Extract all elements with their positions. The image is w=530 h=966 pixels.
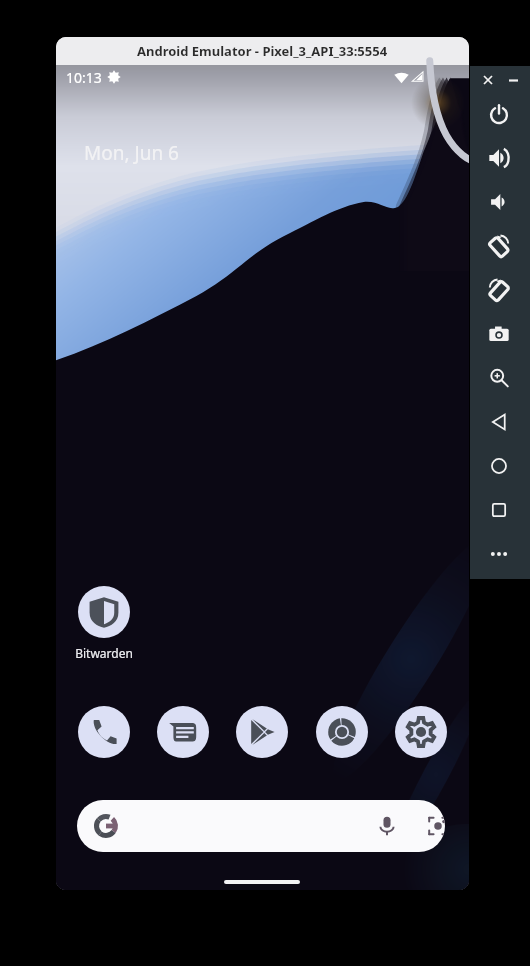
button[interactable]: Screenshot (485, 320, 513, 348)
button[interactable]: Minimize (502, 69, 524, 91)
button[interactable]: Phone (78, 706, 130, 758)
button[interactable]: Power (485, 100, 513, 128)
staticText: Bitwarden (75, 645, 133, 661)
button[interactable]: Rotate right (485, 276, 513, 304)
button[interactable]: Close (477, 69, 499, 91)
button[interactable]: More (485, 540, 513, 568)
button[interactable]: Back (485, 408, 513, 436)
button[interactable]: Messages (157, 706, 209, 758)
button[interactable]: Volume down (485, 188, 513, 216)
staticText: Android Emulator - Pixel_3_API_33:5554 (137, 42, 388, 60)
button[interactable]: Settings (395, 706, 447, 758)
staticText: 10:13 (66, 68, 102, 87)
button[interactable]: Zoom (485, 364, 513, 392)
staticText: Mon, Jun 6 (84, 140, 179, 166)
button[interactable] (77, 800, 445, 852)
button[interactable]: Volume up (485, 144, 513, 172)
button[interactable]: Overview (485, 496, 513, 524)
button[interactable]: Home (485, 452, 513, 480)
button[interactable]: Play Store (236, 706, 288, 758)
button[interactable]: Chrome (316, 706, 368, 758)
button[interactable]: Rotate left (485, 232, 513, 260)
button[interactable]: Bitwarden (56, 586, 164, 661)
